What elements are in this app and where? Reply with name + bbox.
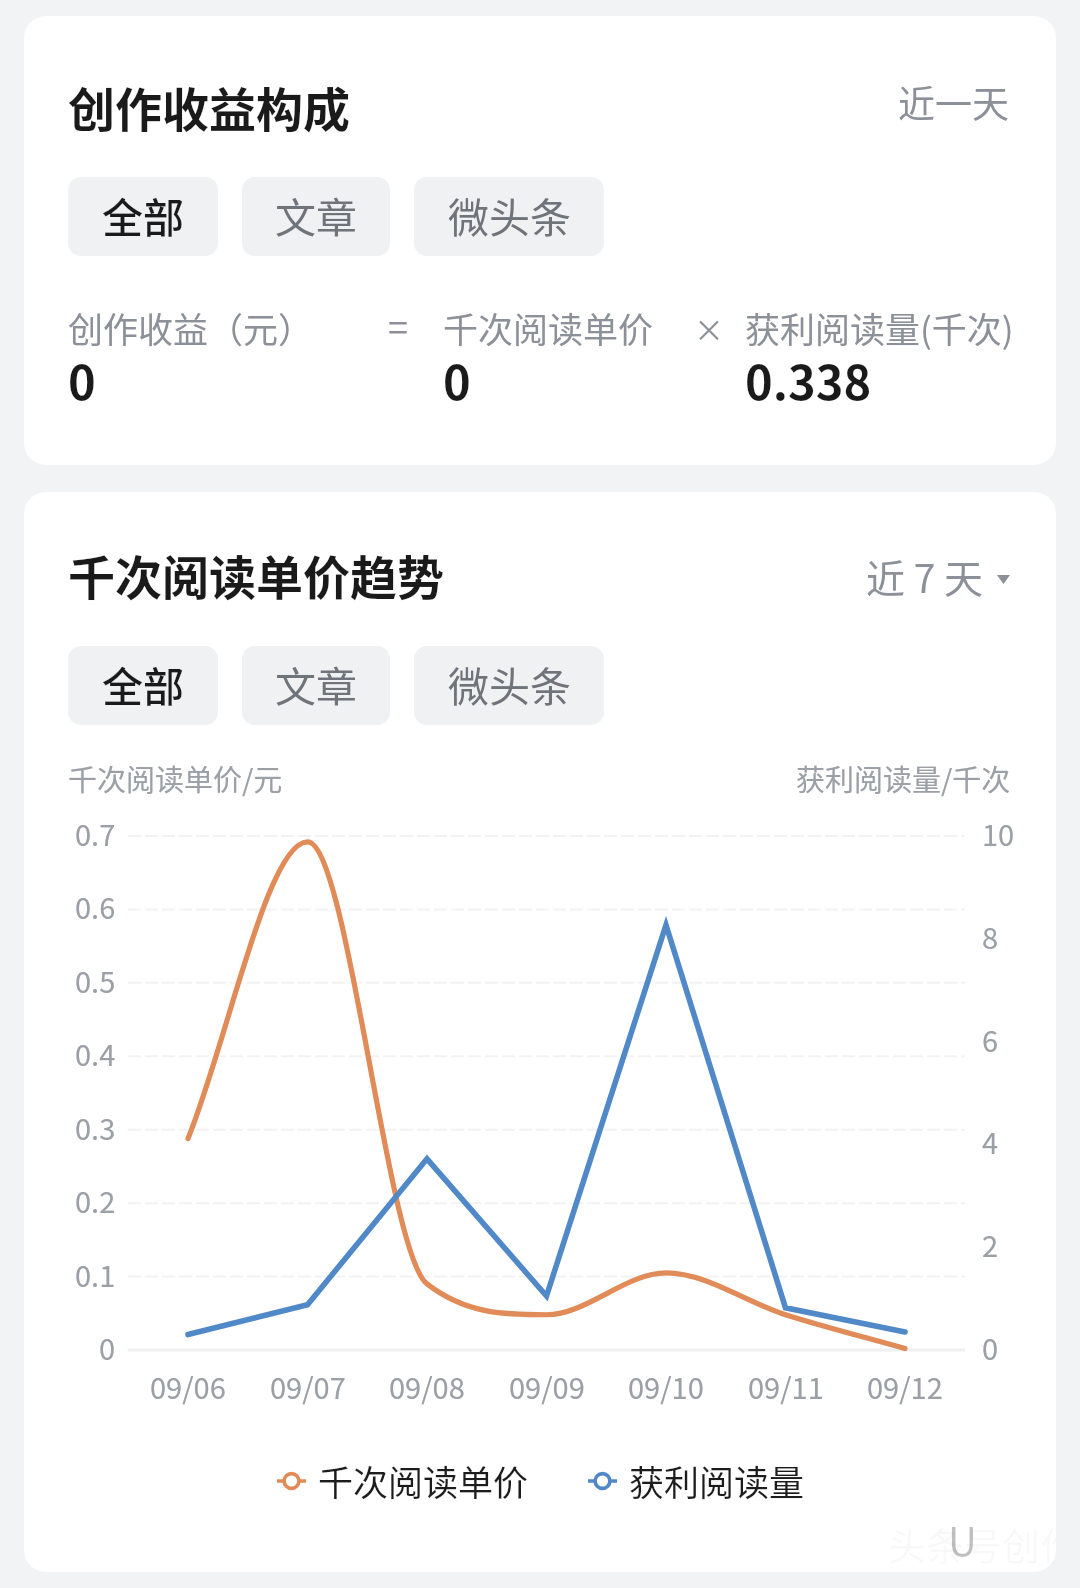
staticText: 获利阅读量 <box>629 1455 805 1506</box>
button[interactable]: 选择时间范围 <box>866 548 1010 604</box>
staticText: 0.3 <box>75 1106 116 1148</box>
staticText: 0 <box>982 1326 999 1368</box>
staticText: 文章 <box>275 185 357 244</box>
staticText: 千次阅读单价 <box>443 302 654 353</box>
staticText: 0.338 <box>745 345 872 413</box>
staticText: 微头条 <box>448 185 571 244</box>
staticText: 09/06 <box>150 1365 226 1407</box>
staticText: 全部 <box>102 185 184 244</box>
staticText: 近一天 <box>898 75 1009 129</box>
staticText: 09/08 <box>389 1365 465 1407</box>
staticText: 0.4 <box>75 1032 116 1074</box>
staticText: 6 <box>982 1018 999 1060</box>
staticText: × <box>694 306 724 349</box>
staticText: 头条号创作 <box>888 1516 1056 1571</box>
staticText: 09/12 <box>867 1365 943 1407</box>
staticText: 千次阅读单价趋势 <box>68 540 444 608</box>
button[interactable]: 文章 <box>242 646 390 725</box>
staticText: 09/07 <box>270 1365 346 1407</box>
staticText: 获利阅读量(千次) <box>745 302 1014 353</box>
staticText: 近 7 天 <box>866 548 984 604</box>
button[interactable]: 微头条 <box>414 646 604 725</box>
staticText: 09/10 <box>628 1365 704 1407</box>
staticText: 千次阅读单价 <box>318 1455 529 1506</box>
staticText: U <box>948 1510 977 1568</box>
button[interactable]: 近一天 <box>898 75 1009 129</box>
staticText: 0 <box>443 345 471 413</box>
button[interactable]: 全部 <box>68 177 218 256</box>
staticText: 09/11 <box>748 1365 824 1407</box>
button[interactable]: 获利阅读量 <box>588 1455 805 1506</box>
button[interactable]: 文章 <box>242 177 390 256</box>
staticText: 2 <box>982 1223 999 1265</box>
staticText: 0 <box>68 345 96 413</box>
staticText: 8 <box>982 915 999 957</box>
button[interactable]: 微头条 <box>414 177 604 256</box>
staticText: 4 <box>982 1120 999 1162</box>
staticText: 09/09 <box>509 1365 585 1407</box>
staticText: 0.5 <box>75 959 116 1001</box>
staticText: 0.2 <box>75 1179 116 1221</box>
staticText: 10 <box>982 812 1015 854</box>
button[interactable]: 全部 <box>68 646 218 725</box>
staticText: 0.1 <box>75 1253 116 1295</box>
button[interactable]: 千次阅读单价 <box>277 1455 529 1506</box>
staticText: 创作收益构成 <box>68 72 350 140</box>
staticText: 0.7 <box>75 812 116 854</box>
staticText: 创作收益（元） <box>68 302 314 353</box>
staticText: 微头条 <box>448 654 571 713</box>
staticText: 0.6 <box>75 885 116 927</box>
staticText: 全部 <box>102 654 184 713</box>
staticText: 获利阅读量/千次 <box>796 757 1011 799</box>
staticText: 0 <box>99 1326 116 1368</box>
staticText: = <box>388 299 408 351</box>
staticText: 千次阅读单价/元 <box>68 757 283 799</box>
staticText: 文章 <box>275 654 357 713</box>
